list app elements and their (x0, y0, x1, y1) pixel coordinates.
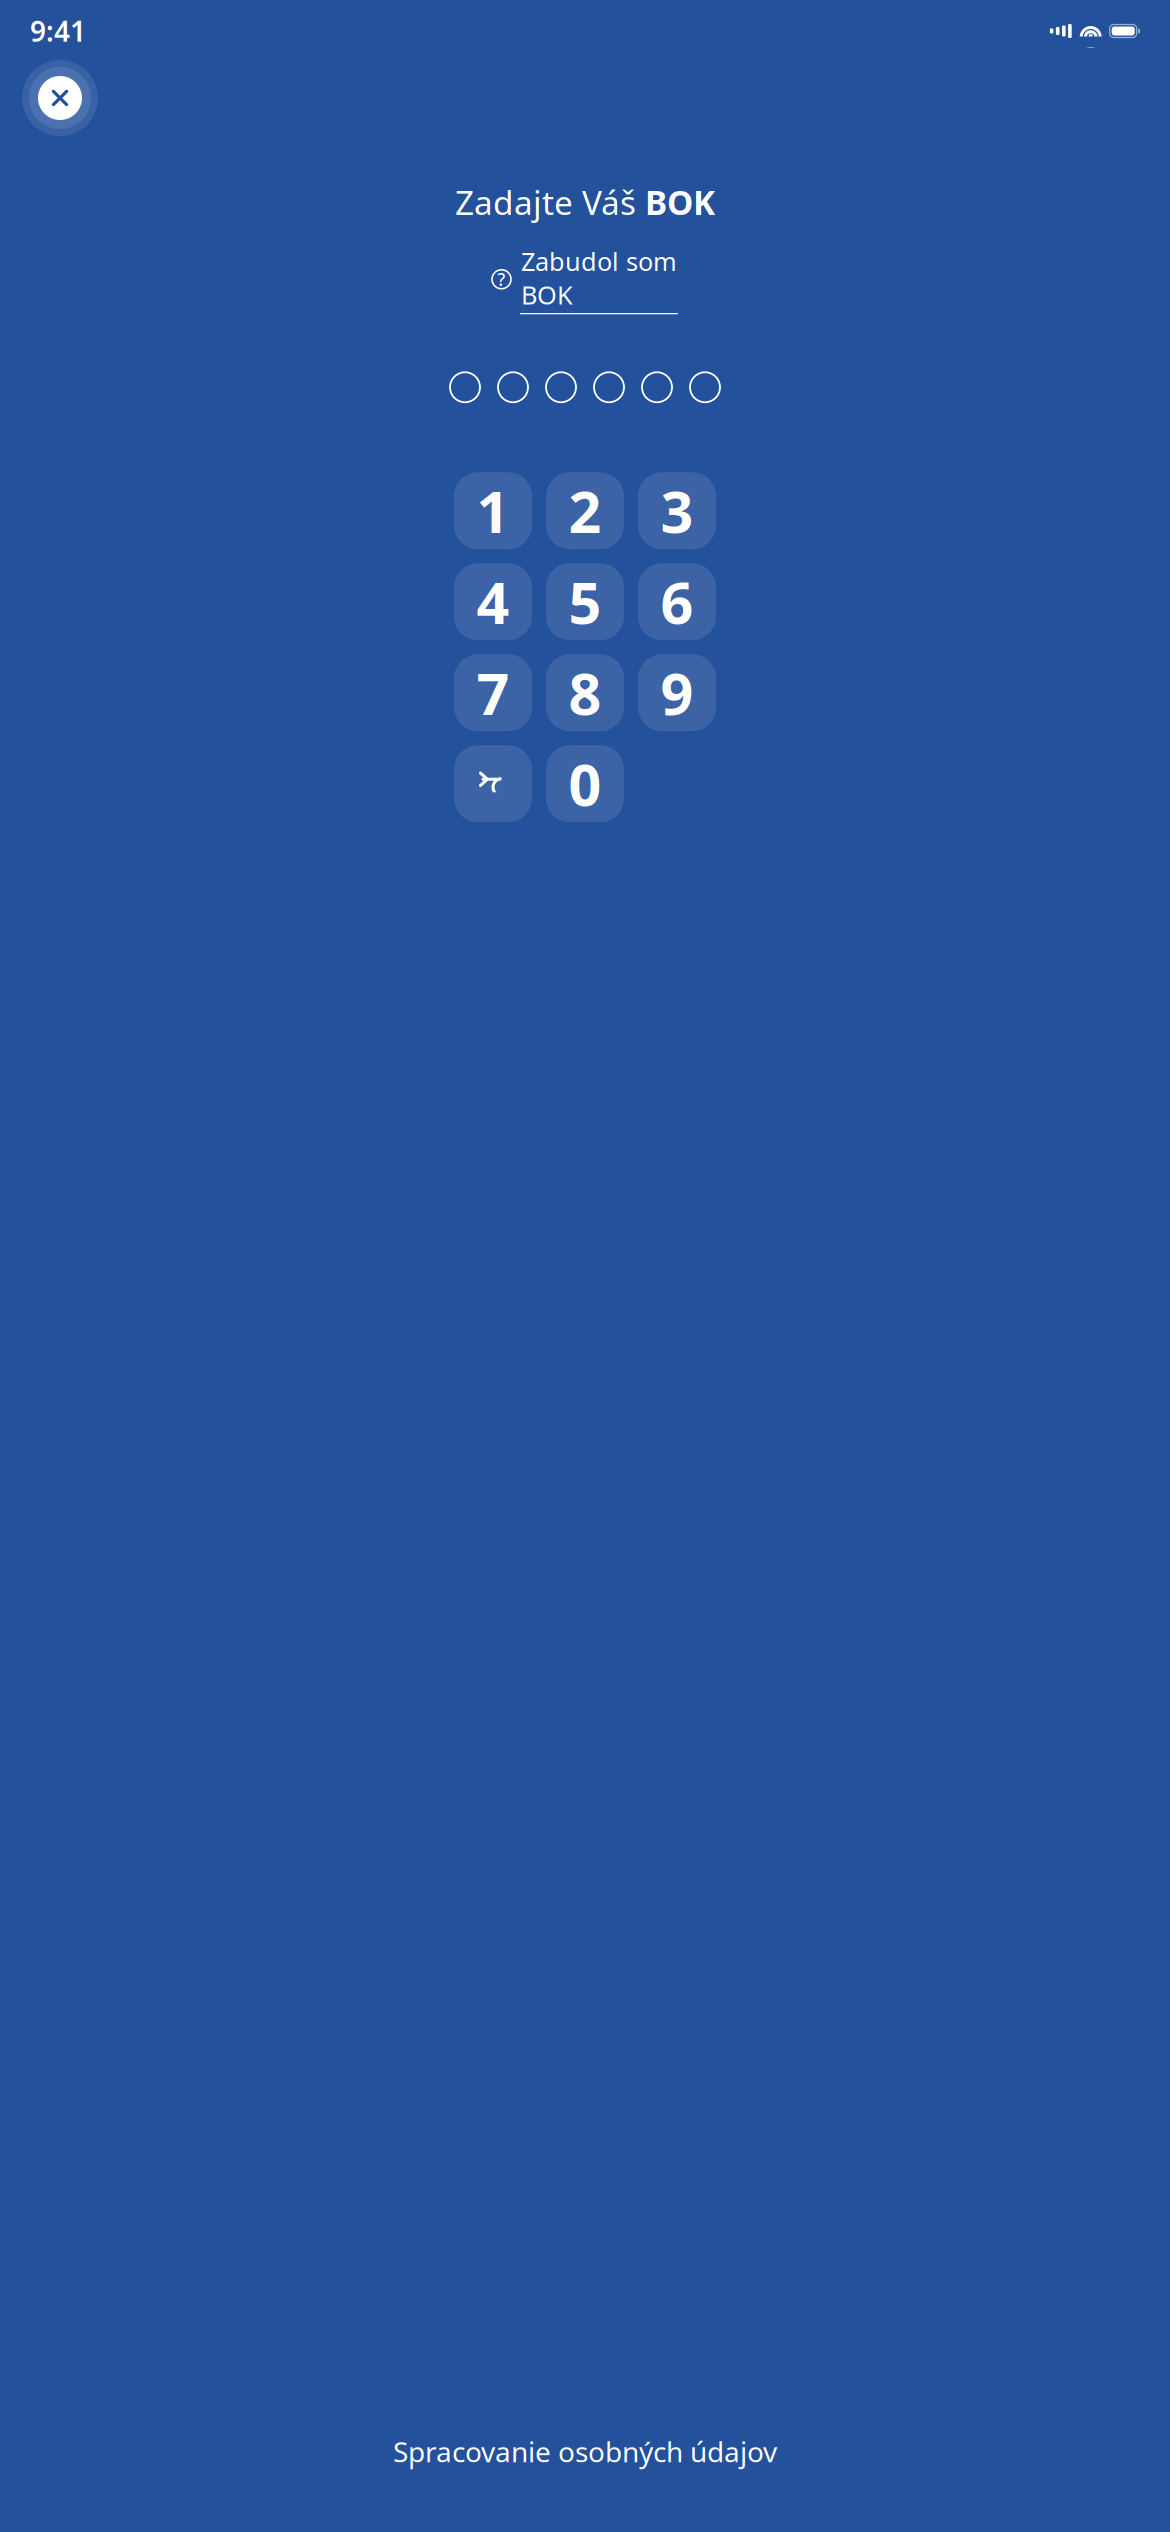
staticText: 8 (568, 655, 601, 731)
button[interactable]: 4 (454, 563, 532, 640)
button[interactable]: 3 (638, 472, 716, 549)
button[interactable]: 9 (638, 654, 716, 731)
button[interactable]: 1 (454, 472, 532, 549)
staticText: Spracovanie osobných údajov (393, 2433, 777, 2470)
button[interactable]: 2 (546, 472, 624, 549)
staticText: Zadajte Váš (455, 180, 645, 224)
staticText: ? (497, 268, 505, 291)
staticText: 4 (476, 564, 509, 640)
staticText: 2 (568, 473, 601, 549)
staticText: 1 (476, 473, 509, 549)
button[interactable]: ? (482, 238, 688, 320)
staticText: Zabudol som BOK (521, 244, 677, 312)
staticText: 9:41 (30, 12, 86, 50)
button[interactable]: 7 (454, 654, 532, 731)
staticText: 7 (476, 655, 509, 731)
staticText: 6 (660, 564, 693, 640)
button[interactable]: Close (22, 60, 98, 136)
staticText: 9 (660, 655, 693, 731)
staticText: 5 (568, 564, 601, 640)
button[interactable]: Spracovanie osobných údajov (377, 2425, 793, 2478)
staticText: BOK (645, 180, 715, 224)
button[interactable]: Delete (454, 745, 532, 822)
staticText: 0 (568, 746, 601, 822)
button[interactable]: 0 (546, 745, 624, 822)
staticText: 3 (660, 473, 693, 549)
button[interactable]: 5 (546, 563, 624, 640)
button[interactable]: 6 (638, 563, 716, 640)
button[interactable]: 8 (546, 654, 624, 731)
